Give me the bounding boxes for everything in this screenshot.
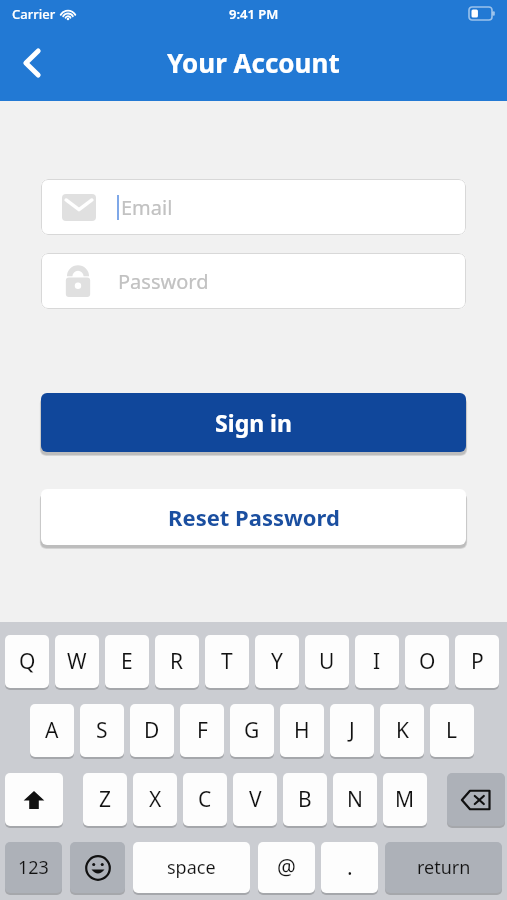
button[interactable]: Emoji — [70, 842, 125, 893]
button[interactable]: F — [180, 704, 224, 757]
button[interactable]: Y — [255, 635, 299, 688]
staticText: E — [121, 647, 133, 676]
button[interactable]: P — [455, 635, 499, 688]
button[interactable]: M — [383, 773, 427, 826]
button[interactable]: U — [305, 635, 349, 688]
staticText: Email — [121, 194, 173, 221]
button[interactable]: Password — [41, 253, 466, 309]
staticText: Sign in — [215, 407, 292, 438]
staticText: O — [419, 647, 436, 676]
staticText: B — [298, 785, 312, 814]
staticText: . — [347, 853, 353, 882]
button[interactable]: S — [80, 704, 124, 757]
staticText: L — [446, 716, 458, 745]
button[interactable]: . — [321, 842, 378, 893]
button[interactable]: W — [55, 635, 99, 688]
button[interactable]: B — [283, 773, 327, 826]
button[interactable]: O — [405, 635, 449, 688]
staticText: U — [319, 647, 335, 676]
staticText: D — [144, 716, 160, 745]
button[interactable]: K — [380, 704, 424, 757]
button[interactable]: Back — [8, 39, 56, 87]
staticText: X — [149, 785, 162, 814]
staticText: A — [45, 716, 59, 745]
button[interactable]: @ — [258, 842, 315, 893]
button[interactable]: X — [133, 773, 177, 826]
staticText: H — [294, 716, 310, 745]
staticText: M — [395, 785, 415, 814]
button[interactable]: Sign in — [41, 393, 466, 452]
staticText: G — [244, 716, 260, 745]
button[interactable]: J — [330, 704, 374, 757]
staticText: N — [347, 785, 363, 814]
button[interactable]: H — [280, 704, 324, 757]
button[interactable]: G — [230, 704, 274, 757]
staticText: I — [373, 647, 381, 676]
button[interactable]: L — [430, 704, 474, 757]
staticText: R — [170, 647, 184, 676]
button[interactable]: 123 — [5, 842, 62, 893]
button[interactable]: Q — [5, 635, 49, 688]
button[interactable]: Z — [83, 773, 127, 826]
button[interactable]: D — [130, 704, 174, 757]
button[interactable]: Email — [41, 179, 466, 235]
staticText: Q — [19, 647, 36, 676]
staticText: Reset Password — [168, 502, 340, 532]
staticText: Z — [99, 785, 112, 814]
button[interactable]: T — [205, 635, 249, 688]
staticText: space — [167, 855, 216, 880]
button[interactable]: R — [155, 635, 199, 688]
button[interactable]: A — [30, 704, 74, 757]
button[interactable]: Shift — [5, 773, 63, 826]
button[interactable]: V — [233, 773, 277, 826]
staticText: 123 — [18, 855, 49, 880]
staticText: Your Account — [167, 45, 340, 80]
staticText: 9:41 PM — [229, 5, 279, 23]
staticText: @ — [277, 853, 296, 882]
button[interactable]: space — [133, 842, 250, 893]
staticText: Carrier — [12, 5, 56, 23]
button[interactable]: C — [183, 773, 227, 826]
staticText: C — [198, 785, 212, 814]
button[interactable]: I — [355, 635, 399, 688]
staticText: V — [249, 785, 262, 814]
staticText: P — [471, 647, 484, 676]
staticText: return — [417, 855, 471, 880]
button[interactable]: N — [333, 773, 377, 826]
staticText: J — [349, 716, 355, 745]
staticText: T — [221, 647, 233, 676]
button[interactable]: E — [105, 635, 149, 688]
staticText: S — [96, 716, 108, 745]
staticText: W — [67, 647, 87, 676]
button[interactable]: return — [385, 842, 502, 893]
staticText: Password — [118, 268, 209, 295]
staticText: K — [396, 716, 409, 745]
staticText: Y — [271, 647, 283, 676]
button[interactable]: Backspace — [447, 773, 505, 826]
staticText: F — [197, 716, 208, 745]
button[interactable]: Reset Password — [41, 489, 466, 545]
